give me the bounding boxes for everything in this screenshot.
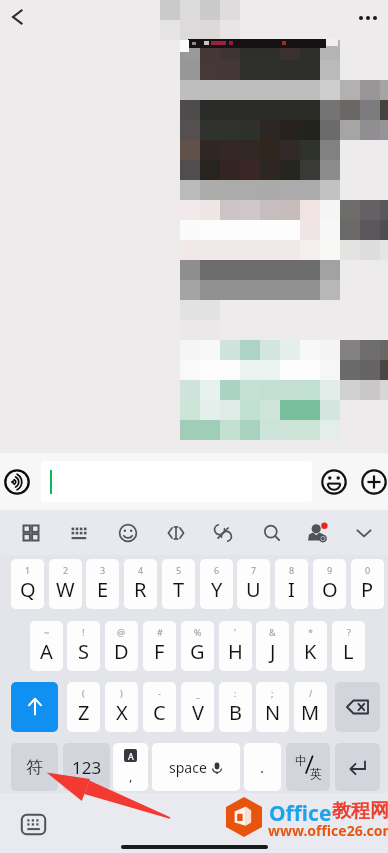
staticText: 教程网 — [332, 799, 388, 823]
button[interactable]: Text cursor — [154, 510, 198, 555]
staticText: ! — [82, 626, 85, 638]
button[interactable]: 6 — [200, 559, 233, 609]
staticText: Y — [211, 576, 223, 603]
staticText: V — [192, 699, 204, 726]
button[interactable]: _ — [181, 682, 214, 732]
button[interactable]: / — [294, 682, 327, 732]
staticText: ) — [120, 687, 123, 699]
button[interactable]: Enter — [335, 743, 380, 791]
button[interactable]: A — [113, 743, 148, 791]
staticText: ; — [271, 687, 274, 699]
button[interactable]: Back — [1, 0, 34, 33]
staticText: 符 — [26, 757, 43, 778]
staticText: K — [304, 638, 317, 665]
staticText: C — [153, 699, 166, 726]
staticText: & — [269, 626, 276, 638]
staticText: J — [270, 638, 276, 665]
staticText: D — [114, 638, 129, 665]
button[interactable]: ? — [332, 621, 365, 671]
button[interactable]: More options — [351, 2, 385, 34]
staticText: 1 — [25, 564, 31, 576]
button[interactable]: 9 — [313, 559, 346, 609]
staticText: P — [361, 576, 374, 603]
staticText: R — [134, 576, 147, 603]
button[interactable]: 8 — [275, 559, 308, 609]
button[interactable]: space — [152, 743, 240, 791]
staticText: ( — [82, 687, 85, 699]
button[interactable]: Voice input — [4, 469, 30, 495]
staticText: # — [157, 626, 163, 638]
staticText: , — [129, 767, 133, 785]
button[interactable]: . — [244, 743, 281, 791]
button[interactable]: Emoji — [106, 510, 150, 555]
button[interactable]: 7 — [237, 559, 270, 609]
button[interactable]: Switch keyboard — [21, 814, 46, 835]
button[interactable]: Emoji — [321, 469, 347, 495]
button[interactable]: % — [181, 621, 214, 671]
staticText: / — [309, 687, 313, 699]
button[interactable]: Search — [250, 510, 294, 555]
staticText: 9 — [327, 564, 333, 576]
button[interactable]: Collapse keyboard — [342, 510, 386, 555]
staticText: % — [194, 626, 202, 638]
staticText: www.office26.com — [268, 821, 388, 840]
staticText: space — [169, 758, 207, 777]
staticText: ' — [234, 626, 237, 638]
button[interactable]: 符 — [11, 743, 58, 791]
staticText: 0 — [365, 564, 371, 576]
staticText: T — [173, 576, 185, 603]
button[interactable]: 123 — [63, 743, 110, 791]
button[interactable]: : — [219, 682, 252, 732]
button[interactable]: 中 — [286, 743, 330, 791]
button[interactable]: Add attachment — [361, 469, 387, 495]
button[interactable]: 4 — [124, 559, 157, 609]
staticText: L — [343, 638, 354, 665]
button[interactable]: ~ — [30, 621, 63, 671]
button[interactable]: 3 — [86, 559, 119, 609]
staticText: 3 — [100, 564, 106, 576]
staticText: 7 — [251, 564, 257, 576]
staticText: H — [228, 638, 243, 665]
staticText: Z — [78, 699, 90, 726]
button[interactable] — [41, 461, 312, 502]
button[interactable]: ; — [256, 682, 289, 732]
staticText: G — [190, 638, 205, 665]
button[interactable]: & — [256, 621, 289, 671]
staticText: ~ — [44, 626, 50, 638]
staticText: * — [308, 626, 313, 638]
button[interactable]: ! — [67, 621, 100, 671]
button[interactable]: 5 — [162, 559, 195, 609]
button[interactable]: * — [294, 621, 327, 671]
button[interactable]: ( — [67, 682, 100, 732]
button[interactable]: Shift — [11, 682, 58, 732]
staticText: 2 — [63, 564, 69, 576]
staticText: W — [56, 576, 75, 603]
staticText: S — [78, 638, 89, 665]
button[interactable]: Attachment — [201, 510, 245, 555]
button[interactable]: Contacts — [295, 510, 339, 555]
button[interactable]: # — [143, 621, 176, 671]
staticText: Q — [20, 576, 36, 603]
button[interactable]: Keyboard layouts — [9, 510, 53, 555]
button[interactable]: ) — [105, 682, 138, 732]
staticText: @ — [117, 626, 126, 638]
button[interactable]: 1 — [11, 559, 44, 609]
button[interactable]: Keyboard — [57, 510, 101, 555]
staticText: _ — [196, 687, 200, 699]
button[interactable]: @ — [105, 621, 138, 671]
button[interactable]: Backspace — [335, 682, 380, 732]
staticText: I — [288, 576, 295, 603]
button[interactable]: - — [143, 682, 176, 732]
button[interactable]: ' — [219, 621, 252, 671]
staticText: 123 — [72, 756, 102, 779]
button[interactable]: 2 — [49, 559, 82, 609]
staticText: 5 — [176, 564, 182, 576]
staticText: 中 — [295, 753, 307, 768]
staticText: ? — [347, 626, 351, 638]
button[interactable]: 0 — [351, 559, 384, 609]
staticText: O — [322, 576, 338, 603]
staticText: M — [301, 699, 320, 726]
staticText: B — [229, 699, 242, 726]
staticText: 4 — [138, 564, 144, 576]
staticText: 8 — [289, 564, 295, 576]
